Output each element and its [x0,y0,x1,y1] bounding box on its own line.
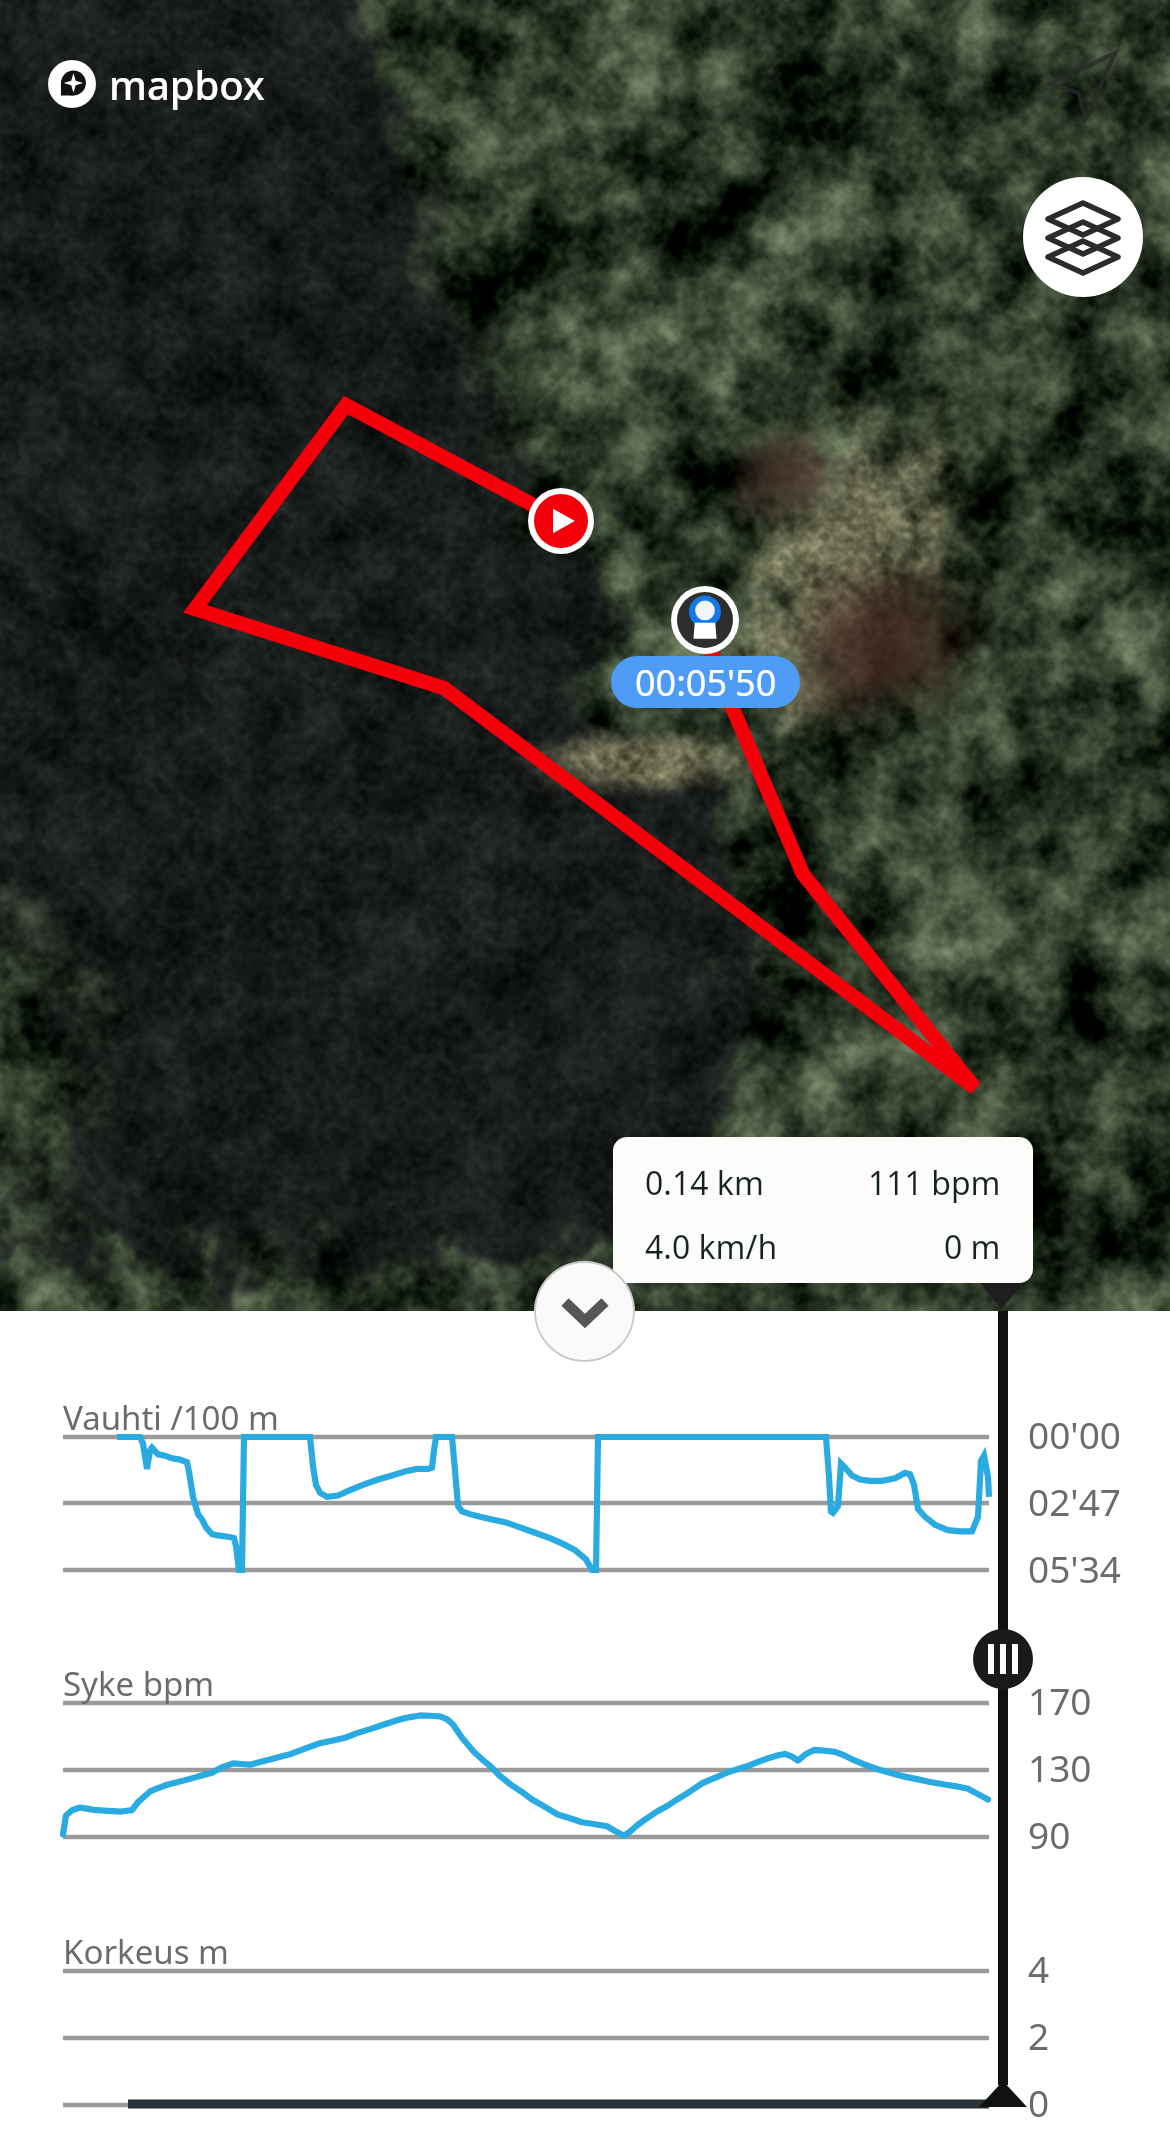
staticText: Korkeus m [63,1929,229,1974]
staticText: Syke bpm [63,1661,215,1706]
staticText: 111 bpm [868,1161,1001,1205]
staticText: 05'34 [1028,1543,1121,1593]
staticText: 90 [1028,1809,1071,1859]
staticText: 2 [1028,2010,1050,2060]
staticText: 170 [1028,1675,1092,1725]
staticText: Vauhti /100 m [63,1395,279,1440]
staticText: 00:05'50 [635,658,777,707]
button[interactable]: 00:05'50 [611,656,800,708]
button[interactable]: Collapse map [534,1261,635,1362]
staticText: 4.0 km/h [645,1225,778,1269]
button[interactable]: Start point [528,488,594,554]
button[interactable]: 0.14 km [613,1137,1033,1283]
staticText: 0 m [944,1225,1001,1269]
button[interactable]: Compass [1045,48,1119,124]
staticText: 02'47 [1028,1476,1121,1526]
staticText: 130 [1028,1742,1092,1792]
staticText: mapbox [109,57,265,111]
staticText: 0.14 km [645,1161,764,1205]
button[interactable]: Current position [671,586,739,654]
staticText: 00'00 [1028,1409,1121,1459]
button[interactable]: Map layers [1023,177,1143,297]
staticText: 0 [1028,2077,1050,2127]
staticText: 4 [1028,1943,1050,1993]
